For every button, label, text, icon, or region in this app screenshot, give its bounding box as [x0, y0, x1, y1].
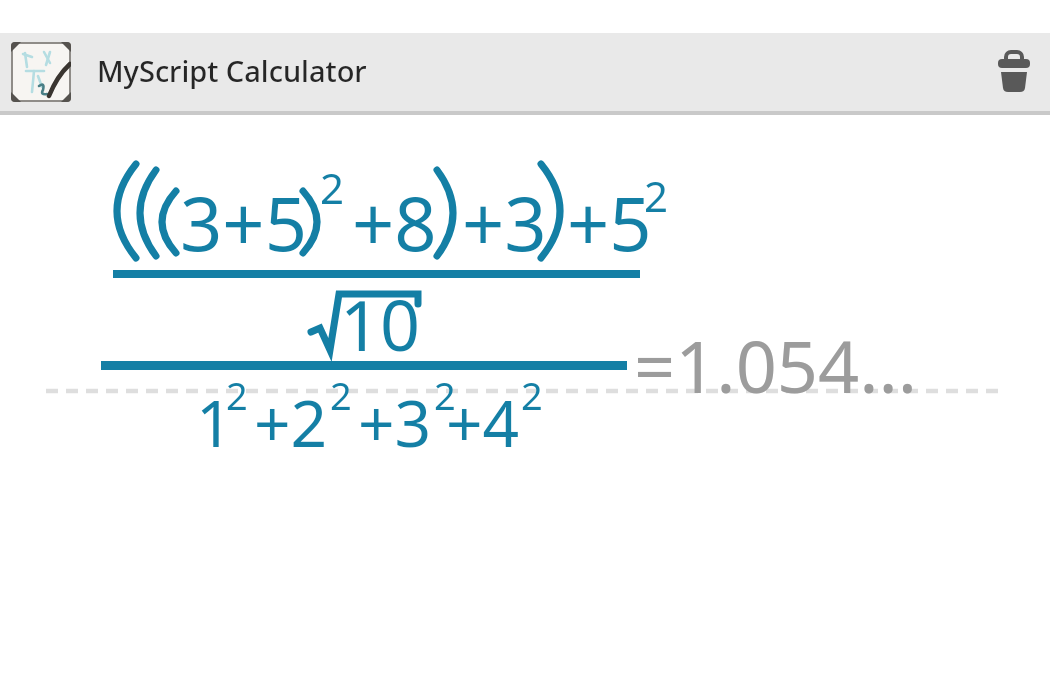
staticText: +3 — [462, 172, 547, 273]
staticText: 2 — [320, 159, 345, 216]
staticText: +8 — [352, 172, 437, 273]
staticText: +3 — [358, 379, 432, 466]
staticText: +2 — [254, 379, 328, 466]
staticText: =1.054... — [634, 316, 918, 414]
staticText: 2 — [521, 369, 543, 421]
button[interactable] — [11, 42, 71, 102]
staticText: 3+5 — [180, 172, 307, 273]
staticText: 2 — [434, 369, 456, 421]
staticText: 2 — [644, 167, 669, 224]
staticText: 2 — [226, 369, 248, 421]
staticText: 1 — [196, 379, 233, 466]
staticText: 10 — [340, 276, 421, 371]
button[interactable] — [990, 45, 1038, 99]
staticText: +4 — [446, 379, 520, 466]
staticText: MyScript Calculator — [97, 51, 367, 90]
staticText: 2 — [330, 369, 352, 421]
staticText: +5 — [567, 172, 652, 273]
